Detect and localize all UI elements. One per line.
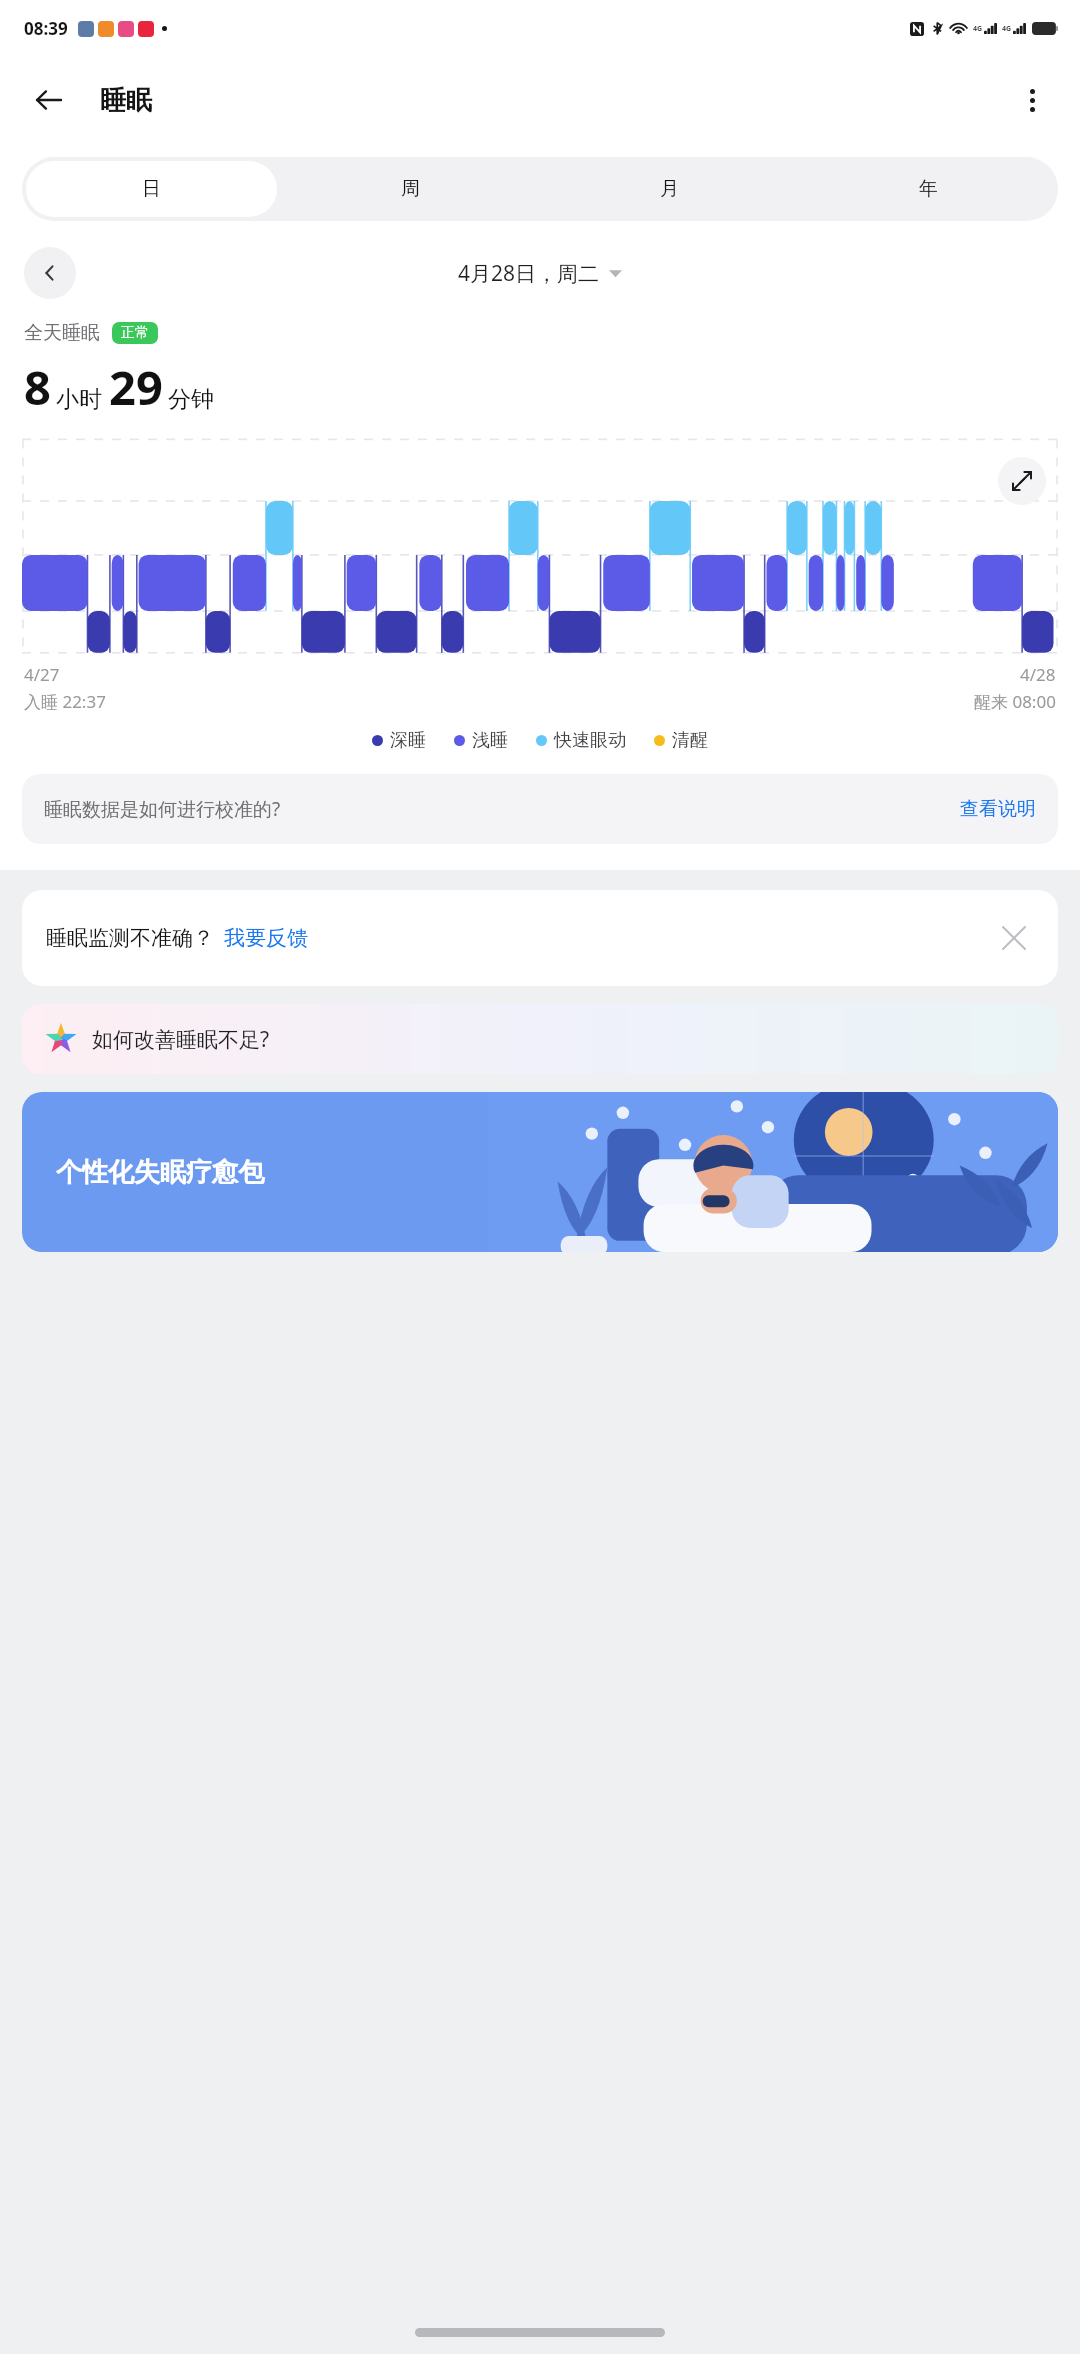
button[interactable]: 周 (285, 161, 536, 217)
button[interactable]: 睡眠数据是如何进行校准的? (22, 774, 1058, 844)
button[interactable]: 睡眠监测不准确？ (22, 890, 1058, 986)
staticText: 睡眠监测不准确？ (46, 925, 214, 951)
button[interactable]: 如何改善睡眠不足? (22, 1004, 1058, 1074)
staticText: 4G (973, 24, 983, 34)
button[interactable]: 年 (803, 161, 1054, 217)
staticText: 入睡 22:37 (24, 690, 106, 713)
button[interactable]: More options (1006, 74, 1058, 126)
staticText: 睡眠 (100, 84, 152, 117)
staticText: 正常 (121, 324, 149, 342)
staticText: 我要反馈 (224, 925, 308, 951)
staticText: 08:39 (24, 17, 68, 40)
staticText: 年 (919, 177, 938, 201)
button[interactable]: 月 (544, 161, 795, 217)
staticText: 4月28日，周二 (458, 259, 600, 288)
staticText: 分钟 (168, 385, 214, 414)
staticText: 日 (142, 177, 161, 201)
staticText: 如何改善睡眠不足? (92, 1025, 270, 1054)
staticText: 小时 (56, 385, 102, 414)
staticText: 4/27 (24, 663, 60, 686)
button[interactable]: Expand chart (998, 457, 1046, 505)
staticText: 周 (401, 177, 420, 201)
button[interactable]: Dismiss (994, 918, 1034, 958)
staticText: 8 (24, 355, 51, 419)
button[interactable]: 个性化失眠疗愈包 (22, 1092, 1058, 1252)
staticText: 29 (109, 355, 163, 419)
staticText: 全天睡眠 (24, 321, 100, 345)
staticText: 查看说明 (960, 797, 1036, 821)
button[interactable]: 日 (26, 161, 277, 217)
staticText: 深睡 (390, 729, 426, 752)
staticText: 醒来 08:00 (974, 690, 1056, 713)
staticText: 浅睡 (472, 729, 508, 752)
staticText: 个性化失眠疗愈包 (56, 1156, 264, 1189)
button[interactable]: 4月28日，周二 (458, 259, 622, 288)
staticText: 睡眠数据是如何进行校准的? (44, 796, 281, 822)
staticText: 4/28 (1020, 663, 1056, 686)
staticText: 快速眼动 (554, 729, 626, 752)
staticText: 清醒 (672, 729, 708, 752)
button[interactable]: Previous day (24, 247, 76, 299)
staticText: 4G (1002, 24, 1012, 34)
staticText: 月 (660, 177, 679, 201)
button[interactable]: Back (20, 72, 76, 128)
